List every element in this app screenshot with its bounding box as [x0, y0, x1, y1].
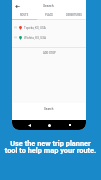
- staticText: Topeka, KS, USA: [24, 26, 46, 30]
- staticText: Wichita, KS, USA: [24, 36, 46, 40]
- button[interactable]: Home: [44, 120, 54, 130]
- button[interactable]: Wichita, KS, USA: [14, 33, 86, 42]
- button[interactable]: Search: [12, 103, 86, 120]
- staticText: ROUTE: [20, 14, 29, 17]
- button[interactable]: Back: [24, 120, 34, 130]
- button[interactable]: Recent apps: [65, 120, 75, 130]
- staticText: DEPARTURES: [66, 14, 82, 17]
- staticText: Search: [44, 107, 54, 111]
- button[interactable]: ADD STOP: [12, 48, 86, 56]
- staticText: PLACE: [45, 14, 53, 17]
- button[interactable]: Back: [12, 1, 22, 11]
- staticText: ADD STOP: [43, 51, 56, 54]
- button[interactable]: DEPARTURES: [61, 11, 86, 19]
- staticText: Search: [43, 4, 54, 8]
- staticText: Use the new trip planner tool to help ma…: [4, 139, 97, 155]
- button[interactable]: Topeka, KS, USA: [14, 23, 86, 32]
- button[interactable]: ROUTE: [12, 11, 36, 19]
- button[interactable]: PLACE: [36, 11, 61, 19]
